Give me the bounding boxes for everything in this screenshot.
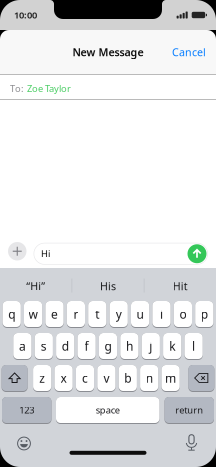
staticText: o bbox=[179, 306, 186, 322]
button[interactable] bbox=[183, 434, 199, 451]
staticText: His bbox=[100, 279, 116, 293]
button[interactable]: z bbox=[33, 365, 51, 392]
staticText: d bbox=[62, 338, 69, 354]
button[interactable]: i bbox=[152, 301, 171, 328]
staticText: i bbox=[160, 306, 163, 322]
staticText: Zoe Taylor bbox=[27, 82, 71, 95]
button[interactable]: g bbox=[99, 333, 117, 360]
staticText: Cancel bbox=[172, 45, 206, 59]
button[interactable]: t bbox=[88, 301, 106, 328]
button[interactable]: “Hi” bbox=[0, 268, 72, 298]
button[interactable]: m bbox=[161, 365, 180, 392]
button[interactable]: h bbox=[120, 333, 138, 360]
button[interactable]: Hi bbox=[33, 243, 208, 265]
staticText: 10:00 bbox=[14, 9, 37, 21]
button[interactable]: e bbox=[45, 301, 64, 328]
staticText: h bbox=[126, 338, 133, 354]
button[interactable]: a bbox=[13, 333, 31, 360]
button[interactable]: r bbox=[67, 301, 85, 328]
staticText: return bbox=[175, 404, 203, 416]
button[interactable]: To: bbox=[0, 75, 216, 99]
button[interactable]: l bbox=[184, 333, 203, 360]
staticText: To: bbox=[10, 82, 24, 95]
staticText: space bbox=[96, 404, 120, 416]
button[interactable]: q bbox=[3, 301, 21, 328]
staticText: m bbox=[165, 370, 176, 386]
button[interactable]: v bbox=[97, 365, 115, 392]
button[interactable] bbox=[8, 242, 26, 265]
staticText: u bbox=[137, 306, 144, 322]
button[interactable]: Hit bbox=[144, 268, 216, 298]
button[interactable]: c bbox=[76, 365, 94, 392]
staticText: Hit bbox=[173, 279, 188, 293]
staticText: s bbox=[41, 338, 47, 354]
staticText: n bbox=[146, 370, 153, 386]
button[interactable] bbox=[188, 365, 214, 392]
staticText: f bbox=[85, 338, 89, 354]
button[interactable] bbox=[17, 436, 31, 450]
staticText: x bbox=[61, 370, 67, 386]
staticText: g bbox=[104, 338, 111, 354]
staticText: w bbox=[29, 306, 38, 322]
button[interactable]: x bbox=[54, 365, 73, 392]
staticText: b bbox=[124, 370, 131, 386]
button[interactable] bbox=[187, 244, 208, 263]
button[interactable]: His bbox=[72, 268, 144, 298]
staticText: “Hi” bbox=[26, 279, 45, 293]
button[interactable]: o bbox=[174, 301, 192, 328]
button[interactable] bbox=[2, 365, 28, 392]
staticText: e bbox=[51, 306, 58, 322]
button[interactable]: 123 bbox=[2, 397, 51, 424]
staticText: p bbox=[201, 306, 208, 322]
staticText: r bbox=[73, 306, 78, 322]
button[interactable]: Cancel bbox=[172, 45, 216, 59]
button[interactable]: d bbox=[56, 333, 74, 360]
staticText: Hi bbox=[41, 248, 50, 260]
staticText: q bbox=[8, 306, 15, 322]
button[interactable]: y bbox=[110, 301, 128, 328]
button[interactable]: p bbox=[195, 301, 213, 328]
staticText: a bbox=[19, 338, 26, 354]
button[interactable]: j bbox=[142, 333, 160, 360]
button[interactable]: u bbox=[131, 301, 149, 328]
button[interactable]: return bbox=[164, 397, 214, 424]
staticText: 123 bbox=[19, 404, 34, 416]
button[interactable]: b bbox=[119, 365, 137, 392]
button[interactable]: n bbox=[140, 365, 158, 392]
button[interactable]: k bbox=[163, 333, 181, 360]
staticText: y bbox=[116, 306, 122, 322]
staticText: l bbox=[192, 338, 195, 354]
button[interactable]: f bbox=[77, 333, 96, 360]
staticText: c bbox=[82, 370, 88, 386]
staticText: z bbox=[39, 370, 45, 386]
button[interactable]: s bbox=[35, 333, 53, 360]
staticText: New Message bbox=[72, 45, 143, 59]
staticText: v bbox=[103, 370, 109, 386]
button[interactable]: space bbox=[56, 397, 159, 424]
staticText: j bbox=[149, 338, 152, 354]
staticText: k bbox=[169, 338, 175, 354]
button[interactable]: w bbox=[24, 301, 42, 328]
staticText: t bbox=[95, 306, 99, 322]
